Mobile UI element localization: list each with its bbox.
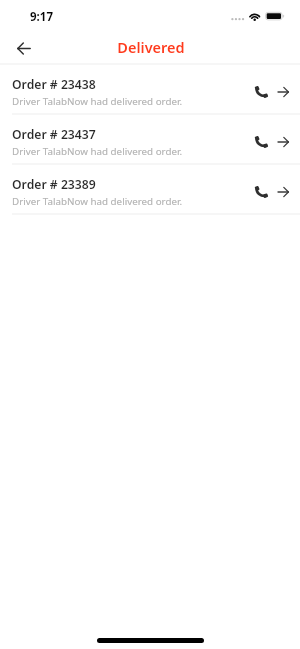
button[interactable]: Call driver (246, 79, 271, 104)
staticText: Driver TalabNow had delivered order. (12, 195, 183, 208)
button[interactable]: Call driver (246, 179, 271, 204)
button[interactable]: Call driver (246, 129, 271, 154)
button[interactable]: View order details (271, 79, 296, 104)
staticText: Order # 23437 (12, 126, 96, 143)
staticText: Driver TalabNow had delivered order. (12, 145, 183, 158)
staticText: Delivered (1, 37, 300, 57)
button[interactable]: View order details (271, 179, 296, 204)
button[interactable]: Order # 23438 (0, 65, 300, 115)
button[interactable]: Order # 23389 (0, 165, 300, 215)
staticText: Order # 23389 (12, 176, 96, 193)
staticText: Driver TalabNow had delivered order. (12, 95, 183, 108)
button[interactable]: Order # 23437 (0, 115, 300, 165)
staticText: 9:17 (30, 9, 53, 25)
button[interactable]: View order details (271, 129, 296, 154)
button[interactable]: Back (11, 35, 37, 61)
staticText: Order # 23438 (12, 76, 96, 93)
